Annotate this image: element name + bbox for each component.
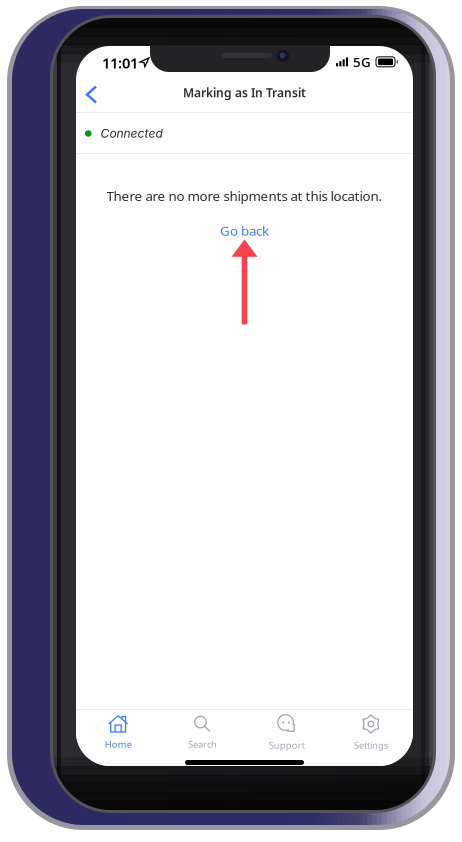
button[interactable]: Go back [208, 205, 281, 243]
staticText: Support [269, 739, 305, 751]
staticText: 11:01 [102, 53, 138, 72]
staticText: Connected [100, 126, 162, 141]
staticText: Marking as In Transit [183, 84, 306, 100]
staticText: Home [105, 738, 132, 750]
staticText: Settings [354, 739, 388, 751]
button[interactable]: Search [160, 710, 244, 756]
staticText: Search [188, 738, 217, 750]
button[interactable]: Settings [329, 710, 413, 756]
button[interactable]: Support [244, 710, 329, 756]
staticText: Go back [220, 222, 269, 239]
button[interactable]: Back [76, 72, 112, 112]
staticText: There are no more shipments at this loca… [106, 187, 382, 205]
button[interactable]: Home [76, 710, 160, 756]
staticText: 5G [353, 53, 371, 71]
